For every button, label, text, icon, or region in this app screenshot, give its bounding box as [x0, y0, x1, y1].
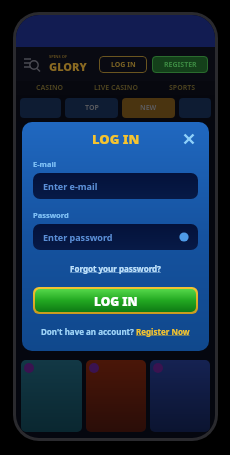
- button[interactable]: TOP: [65, 98, 118, 118]
- button[interactable]: [20, 98, 61, 118]
- button[interactable]: REGISTER: [152, 56, 208, 73]
- button[interactable]: SPORTS: [149, 81, 215, 95]
- staticText: Forgot your password?: [70, 263, 161, 274]
- staticText: CASINO: [36, 83, 64, 93]
- staticText: Don't have an account?: [41, 326, 136, 337]
- button[interactable]: [86, 360, 146, 432]
- button[interactable]: Enter password: [33, 224, 198, 250]
- button[interactable]: LOG IN: [99, 56, 147, 73]
- button[interactable]: LIVE CASINO: [83, 81, 149, 95]
- button[interactable]: Forgot your password?: [68, 261, 163, 276]
- button[interactable]: Enter e-mail: [33, 173, 198, 199]
- staticText: Enter password: [43, 231, 113, 243]
- staticText: NEW: [140, 103, 157, 113]
- button[interactable]: Don't have an account?: [33, 326, 198, 337]
- button[interactable]: Menu and search: [23, 55, 41, 73]
- staticText: Password: [33, 210, 69, 220]
- staticText: REGISTER: [164, 60, 197, 70]
- staticText: Register Now: [136, 326, 190, 337]
- staticText: LOG IN: [94, 293, 138, 309]
- button[interactable]: Show password: [178, 231, 190, 243]
- staticText: SPORTS: [169, 83, 196, 93]
- staticText: E-mail: [33, 159, 56, 169]
- staticText: GLORY: [49, 59, 87, 74]
- button[interactable]: [179, 98, 211, 118]
- button[interactable]: NEW: [122, 98, 175, 118]
- button[interactable]: [21, 360, 82, 432]
- staticText: TOP: [85, 103, 99, 113]
- staticText: LOG IN: [92, 130, 140, 148]
- staticText: Enter e-mail: [43, 180, 98, 192]
- staticText: LIVE CASINO: [94, 83, 139, 93]
- staticText: SPINS OF: [49, 54, 68, 59]
- button[interactable]: [150, 360, 210, 432]
- button[interactable]: LOG IN: [35, 289, 196, 312]
- staticText: LOG IN: [111, 60, 136, 70]
- button[interactable]: CASINO: [16, 81, 83, 95]
- button[interactable]: Close: [180, 130, 198, 148]
